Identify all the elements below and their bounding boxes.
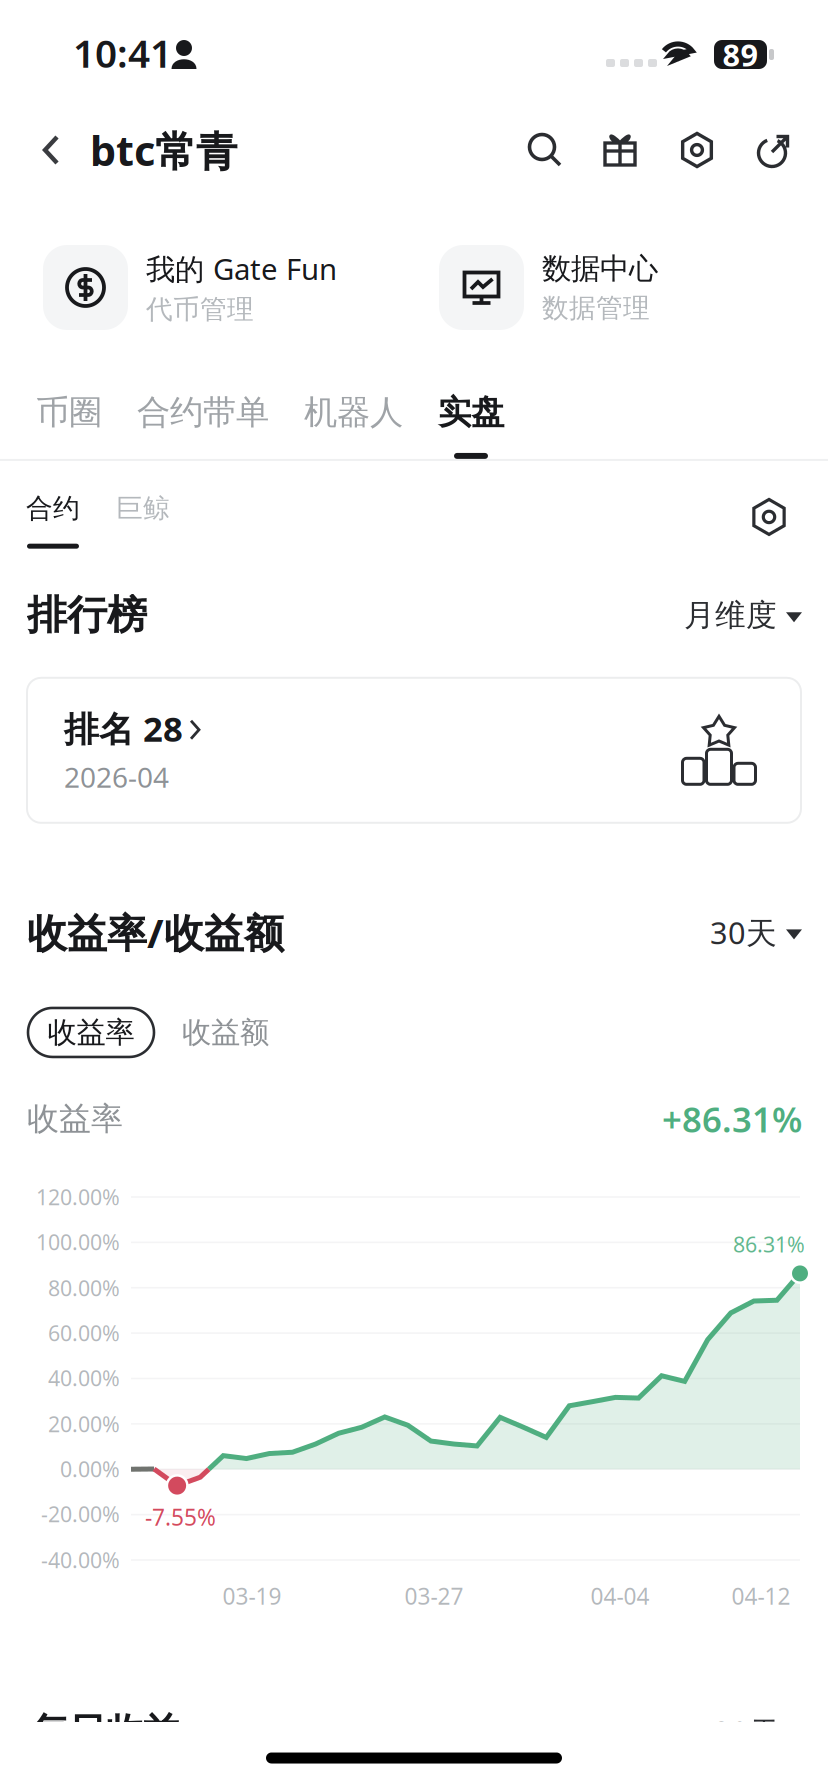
staticText: 40.00% bbox=[48, 1364, 120, 1392]
staticText: 04-04 bbox=[590, 1581, 649, 1611]
button[interactable]: 机器人 bbox=[304, 392, 403, 459]
staticText: 60.00% bbox=[48, 1319, 120, 1347]
button[interactable]: 30天 bbox=[710, 912, 802, 953]
staticText: -7.55% bbox=[145, 1502, 216, 1532]
staticText: 80.00% bbox=[48, 1274, 120, 1302]
button[interactable]: 合约带单 bbox=[137, 392, 269, 459]
button[interactable]: Settings bbox=[746, 494, 792, 540]
button[interactable]: Rewards bbox=[583, 120, 659, 180]
staticText: 30天 bbox=[710, 912, 777, 953]
button[interactable]: 我的 Gate Fun bbox=[43, 245, 439, 330]
staticText: 86.31% bbox=[733, 1230, 805, 1258]
button[interactable]: 巨鲸 bbox=[116, 492, 170, 549]
staticText: 收益率 bbox=[47, 1014, 134, 1050]
button[interactable]: 合约 bbox=[26, 492, 80, 549]
staticText: 收益率/收益额 bbox=[27, 906, 284, 959]
staticText: 数据管理 bbox=[542, 292, 650, 324]
button[interactable]: 月维度 bbox=[684, 596, 802, 634]
staticText: -20.00% bbox=[41, 1500, 120, 1528]
staticText: 代币管理 bbox=[146, 293, 254, 326]
button[interactable]: Back bbox=[22, 120, 80, 180]
staticText: 月维度 bbox=[684, 596, 777, 634]
button[interactable]: Search bbox=[507, 120, 583, 180]
staticText: 数据中心 bbox=[542, 251, 658, 287]
staticText: 2026-04 bbox=[64, 758, 169, 795]
staticText: 币圈 bbox=[36, 392, 102, 433]
button[interactable]: 数据中心 bbox=[439, 245, 769, 330]
staticText: btc常青 bbox=[90, 122, 237, 177]
staticText: 实盘 bbox=[438, 392, 504, 433]
staticText: 合约 bbox=[26, 492, 80, 525]
staticText: 巨鲸 bbox=[116, 492, 170, 525]
staticText: 120.00% bbox=[36, 1183, 120, 1211]
button[interactable]: 收益额 bbox=[182, 1014, 269, 1050]
staticText: 合约带单 bbox=[137, 392, 269, 433]
button[interactable]: Share bbox=[735, 120, 811, 180]
button[interactable]: 排名 28 bbox=[27, 678, 801, 823]
staticText: 20.00% bbox=[48, 1410, 120, 1438]
staticText: 03-19 bbox=[222, 1581, 281, 1611]
staticText: +86.31% bbox=[662, 1096, 802, 1142]
staticText: 我的 Gate Fun bbox=[146, 249, 337, 288]
staticText: 100.00% bbox=[36, 1228, 120, 1256]
staticText: 每日收益 bbox=[32, 1709, 180, 1755]
button[interactable]: Options bbox=[659, 120, 735, 180]
staticText: 排名 28 bbox=[64, 705, 183, 751]
staticText: 0.00% bbox=[60, 1455, 120, 1483]
staticText: 收益率 bbox=[27, 1099, 123, 1139]
staticText: 04-12 bbox=[731, 1581, 790, 1611]
staticText: 89 bbox=[722, 34, 758, 75]
staticText: 10:41 bbox=[73, 27, 172, 78]
staticText: 排行榜 bbox=[27, 591, 147, 640]
button[interactable]: 实盘 bbox=[438, 392, 504, 459]
staticText: -40.00% bbox=[41, 1546, 120, 1574]
staticText: 机器人 bbox=[304, 392, 403, 433]
staticText: 03-27 bbox=[404, 1581, 463, 1611]
staticText: 30天 bbox=[713, 1712, 780, 1752]
button[interactable]: 收益率 bbox=[28, 1008, 154, 1057]
staticText: 收益额 bbox=[182, 1014, 269, 1050]
button[interactable]: 币圈 bbox=[36, 392, 102, 459]
